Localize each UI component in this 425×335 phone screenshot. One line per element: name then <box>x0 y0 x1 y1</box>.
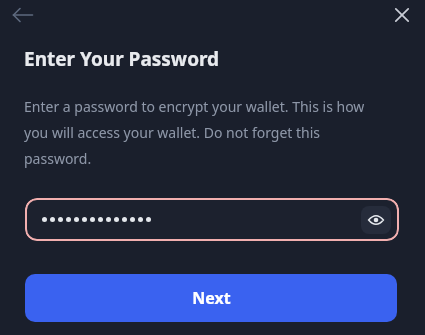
button[interactable]: Close <box>385 0 419 30</box>
staticText: Enter a password to encrypt your wallet.… <box>24 97 382 169</box>
button[interactable]: Back <box>4 0 42 30</box>
staticText: Next <box>192 287 231 309</box>
button[interactable]: Show password <box>25 198 399 241</box>
button[interactable]: Show password <box>361 206 391 234</box>
staticText: Enter Your Password <box>24 46 220 72</box>
button[interactable]: Next <box>25 274 397 322</box>
